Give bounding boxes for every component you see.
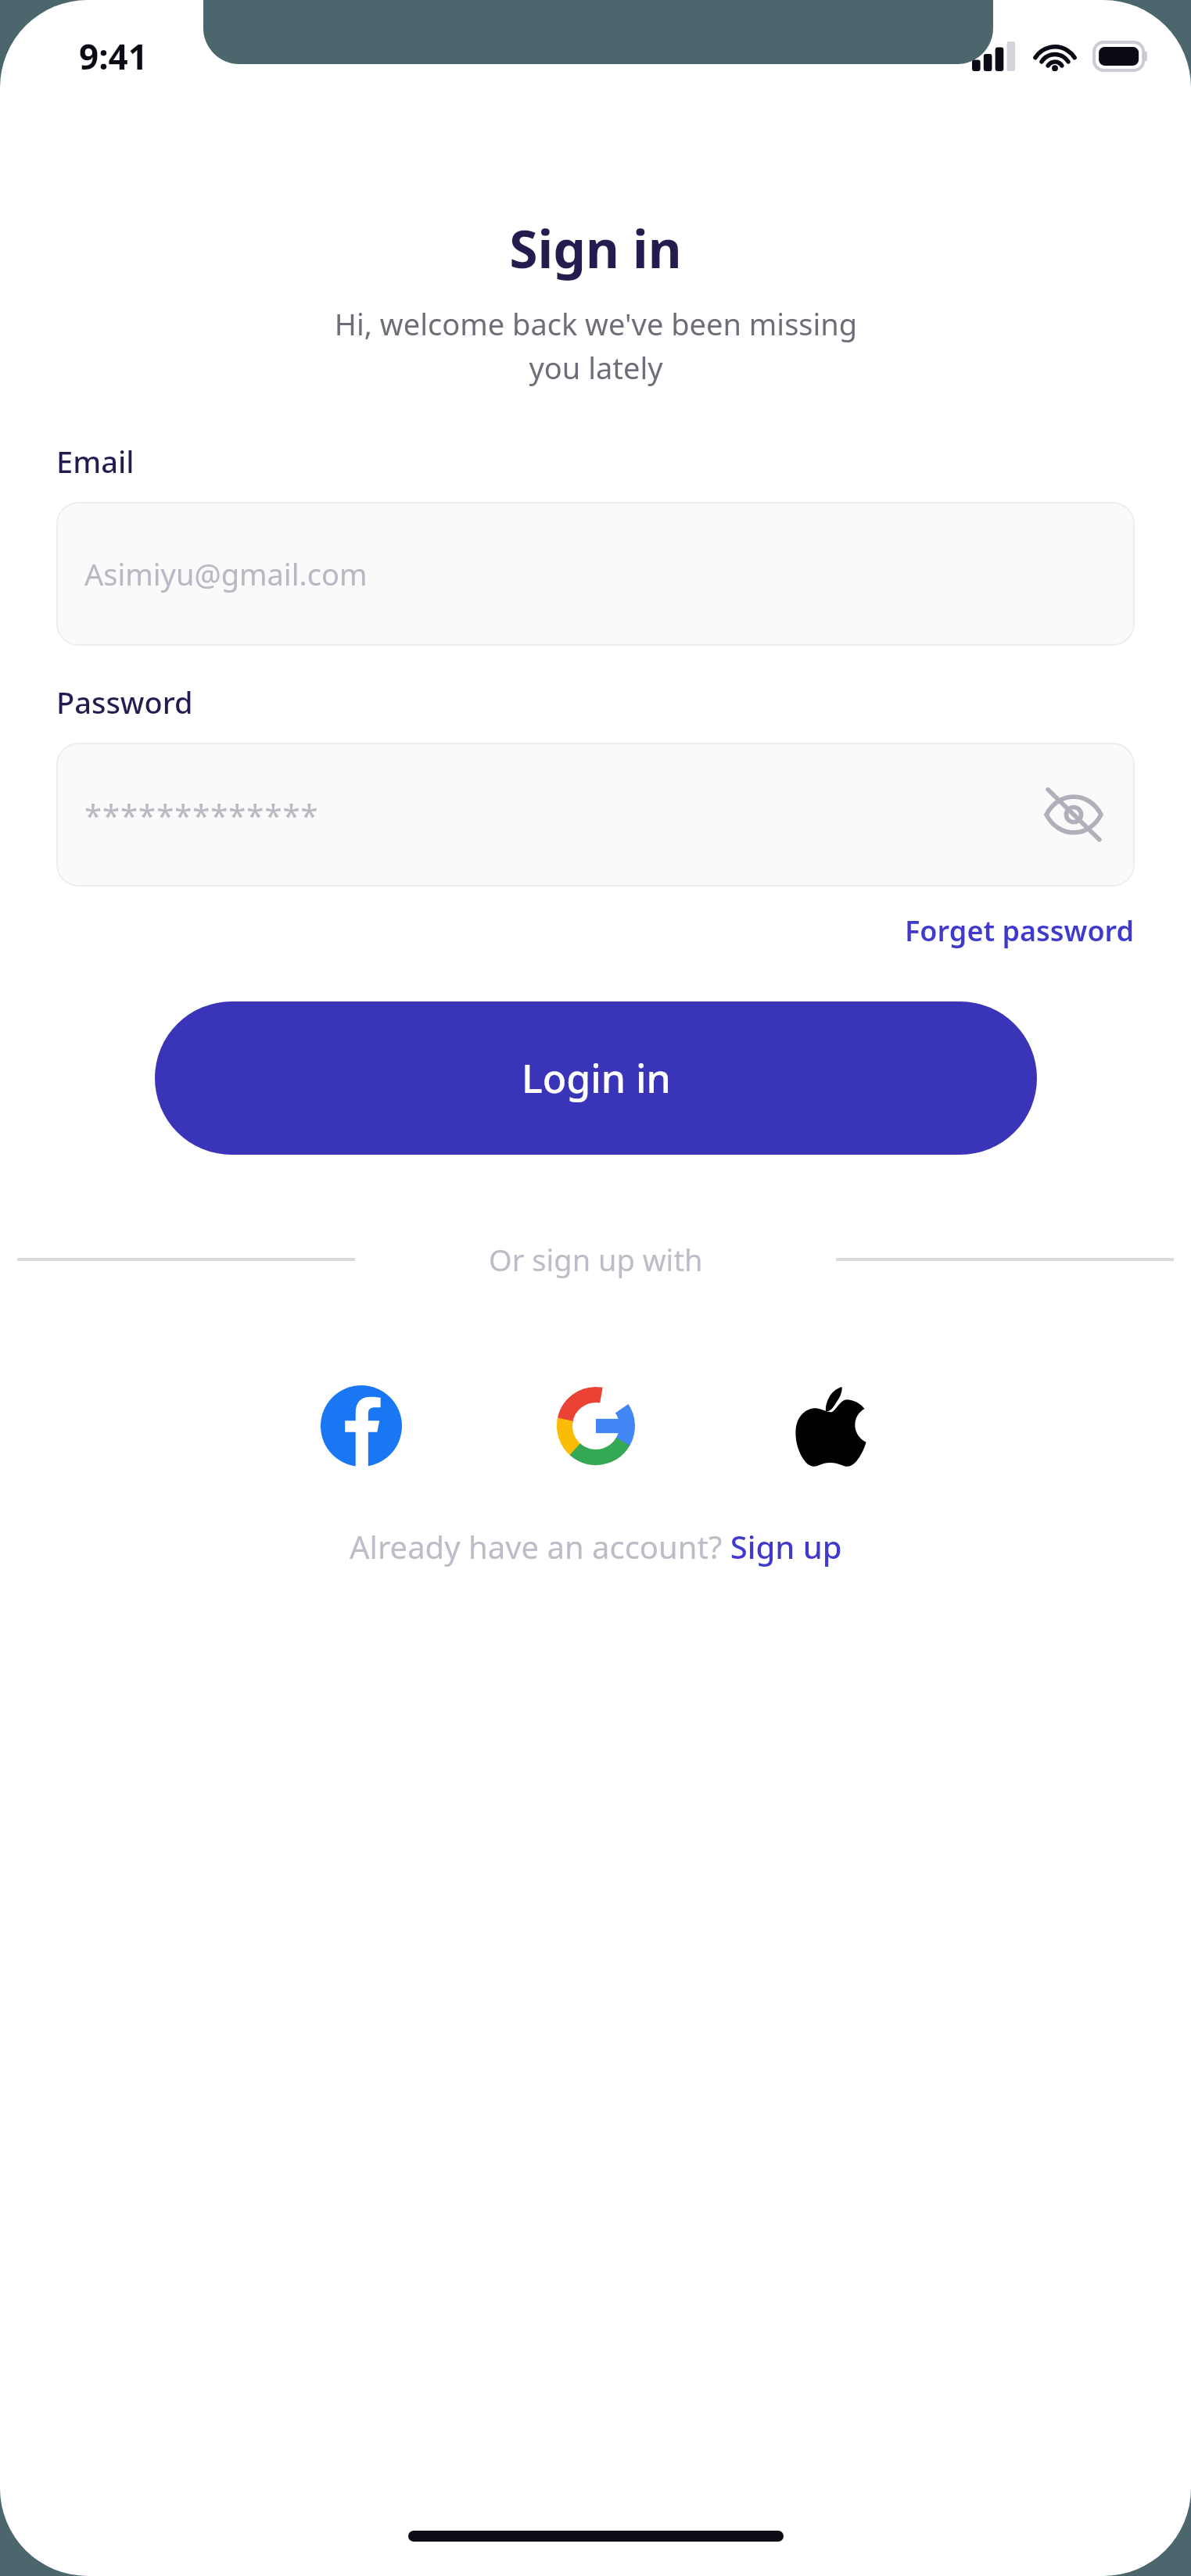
button[interactable]: Sign in with Google — [547, 1377, 645, 1475]
staticText: 9:41 — [79, 33, 148, 80]
button[interactable]: Sign in with Facebook — [312, 1377, 411, 1475]
button[interactable]: Sign in with Apple — [781, 1377, 880, 1475]
staticText: Sign in — [509, 213, 682, 283]
staticText: Forget password — [905, 912, 1135, 950]
staticText: Already have an account? Sign up — [350, 1525, 842, 1567]
staticText: Or sign up with — [489, 1239, 703, 1280]
staticText: Asimiyu@gmail.com — [84, 554, 368, 594]
button[interactable]: Show password — [1041, 782, 1107, 847]
button[interactable]: Forget password — [905, 912, 1135, 950]
button[interactable]: Login in — [155, 1001, 1037, 1155]
staticText: Email — [56, 441, 135, 482]
staticText: Password — [56, 682, 193, 722]
button[interactable]: Already have an account? Sign up — [350, 1525, 842, 1567]
staticText: Login in — [522, 1052, 671, 1105]
button[interactable]: ************* — [56, 743, 1135, 887]
staticText: ************* — [84, 794, 319, 836]
staticText: Hi, welcome back we've been missing you … — [174, 303, 1018, 388]
button[interactable]: Asimiyu@gmail.com — [56, 502, 1135, 646]
